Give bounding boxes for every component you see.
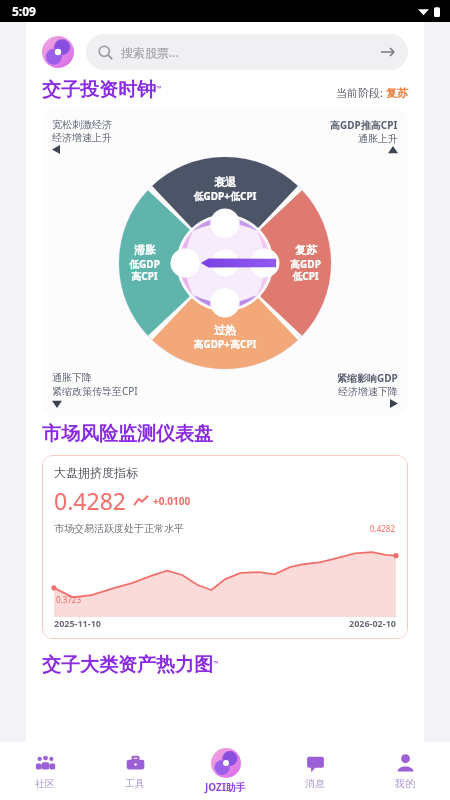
staticText: 0.3723 <box>56 594 82 605</box>
button[interactable]: 大盘拥挤度指标 <box>42 455 408 639</box>
button[interactable]: 搜索股票... <box>86 34 408 70</box>
staticText: 低GDP 高CPI <box>129 257 160 283</box>
staticText: 交子大类资产热力图 <box>42 653 213 677</box>
staticText: 低GDP+低CPI <box>193 189 257 203</box>
staticText: 大盘拥挤度指标 <box>54 465 138 480</box>
staticText: 高GDP推高CPI <box>330 118 398 132</box>
staticText: 复苏 <box>386 86 408 100</box>
staticText: 2025-11-10 <box>54 617 101 629</box>
staticText: 紧缩影响GDP <box>337 371 398 385</box>
staticText: 工具 <box>125 777 145 790</box>
staticText: ™ <box>156 84 162 94</box>
staticText: 通胀上升 <box>358 132 398 145</box>
staticText: 紧缩政策传导至CPI <box>52 384 138 398</box>
staticText: 我的 <box>395 777 415 790</box>
staticText: 社区 <box>35 777 55 790</box>
staticText: 市场风险监测仪表盘 <box>42 422 213 446</box>
staticText: 高GDP+高CPI <box>193 337 257 351</box>
staticText: ™ <box>213 659 219 669</box>
button[interactable]: 消息 <box>270 742 360 800</box>
staticText: 0.4282 <box>54 485 126 516</box>
staticText: 衰退 <box>214 175 236 189</box>
staticText: 5:09 <box>12 3 36 19</box>
staticText: JOZI助手 <box>205 780 246 794</box>
staticText: 交子投资时钟 <box>42 78 156 102</box>
staticText: +0.0100 <box>153 494 191 508</box>
staticText: 2026-02-10 <box>349 617 396 629</box>
staticText: 当前阶段: <box>336 85 386 100</box>
staticText: 过热 <box>214 323 236 337</box>
button[interactable]: 社区 <box>0 742 90 800</box>
other: App logo <box>42 36 74 68</box>
staticText: 宽松刺激经济 <box>52 118 112 131</box>
staticText: 经济增速上升 <box>52 131 112 144</box>
button[interactable]: 工具 <box>90 742 180 800</box>
button[interactable]: JOZI助手 <box>180 742 270 800</box>
staticText: 滞胀 <box>134 243 156 257</box>
staticText: 0.4282 <box>370 523 396 534</box>
staticText: 复苏 <box>295 243 317 257</box>
staticText: 高GDP 低CPI <box>290 257 321 283</box>
staticText: 经济增速下降 <box>338 385 398 398</box>
button[interactable]: 我的 <box>360 742 450 800</box>
staticText: 搜索股票... <box>121 44 179 60</box>
staticText: 消息 <box>305 777 325 790</box>
button[interactable]: 宽松刺激经济 <box>42 110 408 416</box>
staticText: 市场交易活跃度处于正常水平 <box>54 522 184 535</box>
staticText: 通胀下降 <box>52 371 92 384</box>
